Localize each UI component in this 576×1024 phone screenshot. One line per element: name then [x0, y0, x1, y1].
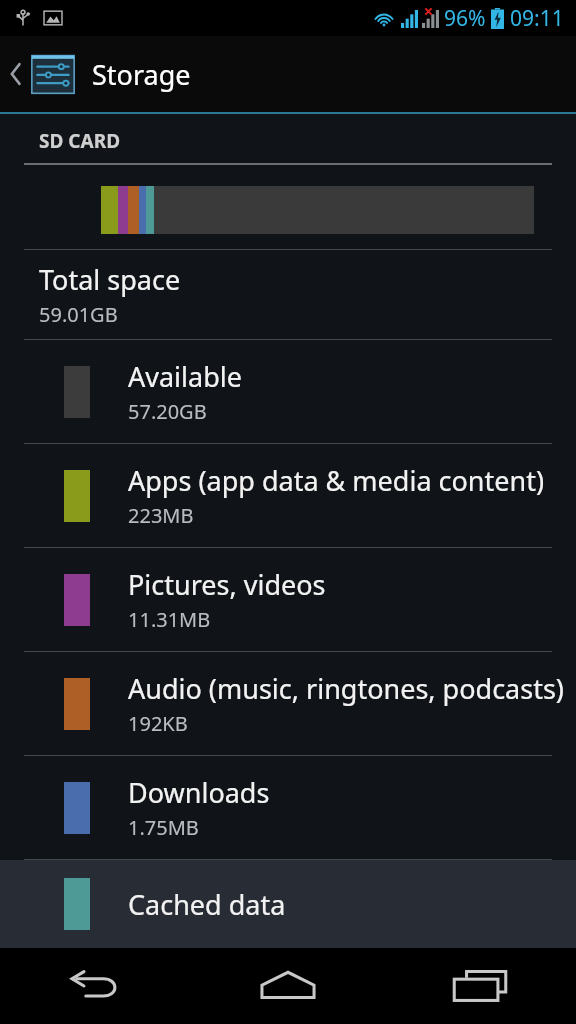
button[interactable]: Back	[0, 948, 192, 1024]
button[interactable]: Total space	[0, 250, 576, 339]
button[interactable]: Home	[192, 948, 384, 1024]
staticText: Apps (app data & media content)	[128, 462, 545, 499]
button[interactable]: Downloads	[0, 756, 576, 859]
button[interactable]: Apps (app data & media content)	[0, 444, 576, 547]
button[interactable]: Available	[0, 340, 576, 443]
staticText: 1.75MB	[128, 814, 199, 841]
staticText: Total space	[39, 261, 181, 298]
staticText: Available	[128, 358, 242, 395]
staticText: 09:11	[510, 4, 564, 33]
staticText: Downloads	[128, 774, 270, 811]
button[interactable]: Navigate up	[0, 36, 576, 112]
button[interactable]: Recent apps	[384, 948, 576, 1024]
staticText: 57.20GB	[128, 398, 207, 425]
staticText: 223MB	[128, 502, 194, 529]
staticText: 96%	[444, 4, 486, 33]
staticText: Storage	[92, 56, 191, 93]
staticText: Pictures, videos	[128, 566, 326, 603]
button[interactable]: Cached data	[0, 860, 576, 948]
staticText: 11.31MB	[128, 606, 211, 633]
staticText: 59.01GB	[39, 301, 118, 328]
button[interactable]: Audio (music, ringtones, podcasts)	[0, 652, 576, 755]
staticText: Audio (music, ringtones, podcasts)	[128, 670, 564, 707]
staticText: 192KB	[128, 710, 188, 737]
staticText: SD CARD	[39, 128, 121, 154]
button[interactable]: Pictures, videos	[0, 548, 576, 651]
staticText: Cached data	[128, 886, 286, 923]
